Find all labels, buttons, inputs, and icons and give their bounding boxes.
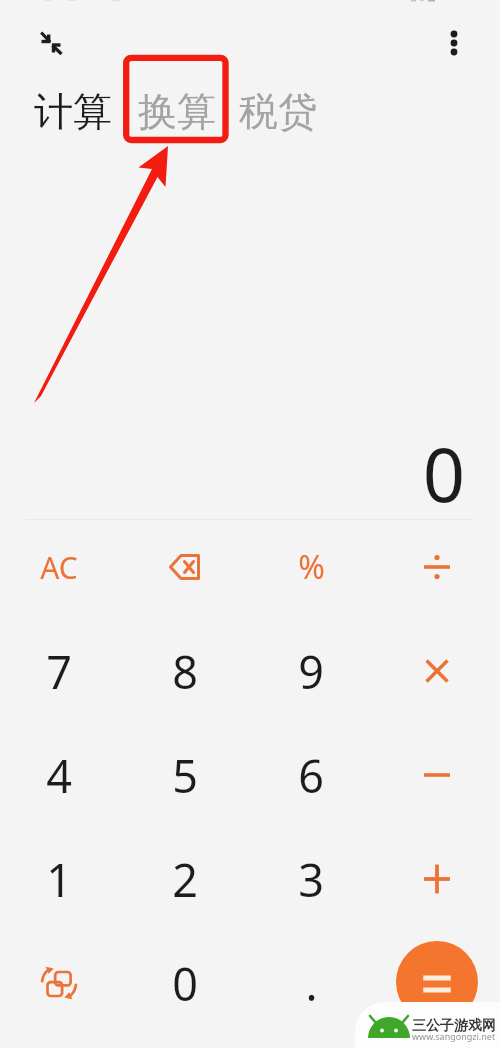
staticText: 7	[46, 641, 72, 702]
staticText: 0	[0, 423, 465, 524]
button[interactable]: Divide	[381, 519, 493, 615]
button[interactable]: .	[255, 935, 367, 1031]
button[interactable]: 税贷	[239, 87, 317, 136]
button[interactable]: Backspace	[129, 519, 241, 615]
staticText: 9	[298, 641, 324, 702]
button[interactable]: 5	[129, 727, 241, 823]
staticText: 换算	[138, 87, 216, 136]
button[interactable]: More options	[440, 22, 470, 52]
button[interactable]: Equals	[396, 941, 478, 1023]
staticText: 计算	[34, 87, 112, 136]
button[interactable]: 8	[129, 623, 241, 719]
staticText: 税贷	[239, 87, 317, 136]
button[interactable]: 6	[255, 727, 367, 823]
staticText: 8	[172, 641, 198, 702]
button[interactable]: Subtract	[381, 727, 493, 823]
button[interactable]: 1	[3, 831, 115, 927]
staticText: 6	[298, 745, 324, 806]
button[interactable]: 计算	[34, 87, 112, 136]
button[interactable]: 7	[3, 623, 115, 719]
staticText: .	[305, 953, 318, 1014]
staticText: 2	[172, 849, 198, 910]
staticText: 1	[46, 849, 72, 910]
button[interactable]: AC	[3, 519, 115, 615]
button[interactable]: Multiply	[381, 623, 493, 719]
button[interactable]: %	[255, 519, 367, 615]
staticText: 3	[298, 849, 324, 910]
staticText: 5	[172, 745, 198, 806]
staticText: www.sangongzi.net	[412, 1030, 496, 1042]
staticText: AC	[40, 547, 78, 588]
button[interactable]: Add	[381, 831, 493, 927]
button[interactable]: 0	[129, 935, 241, 1031]
button[interactable]: Unit converter	[3, 935, 115, 1031]
staticText: 三公子游戏网	[412, 1017, 496, 1035]
button[interactable]: 2	[129, 831, 241, 927]
button[interactable]: Collapse	[34, 25, 70, 61]
staticText: %	[298, 545, 325, 589]
staticText: 4	[46, 745, 72, 806]
button[interactable]: 4	[3, 727, 115, 823]
button[interactable]: 换算	[138, 87, 216, 136]
button[interactable]: 3	[255, 831, 367, 927]
button[interactable]: 9	[255, 623, 367, 719]
staticText: 0	[172, 953, 198, 1014]
